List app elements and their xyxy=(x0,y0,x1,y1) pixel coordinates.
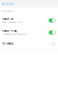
staticText: Set blurred wallpaper on home xyxy=(2,21,23,23)
staticText: Live Wallpaper xyxy=(2,42,14,45)
staticText: Personalization xyxy=(2,10,14,12)
button[interactable]: Wallpaper scrolling xyxy=(0,27,58,38)
staticText: Wallpaper scrolling xyxy=(2,30,17,32)
button[interactable]: Wallpaper Blur xyxy=(0,15,58,26)
staticText: We Launcher xyxy=(4,3,15,5)
staticText: Scroll wallpaper when swiping pages xyxy=(2,33,27,35)
button[interactable]: Live Wallpaper xyxy=(0,39,58,49)
button[interactable]: We Launcher xyxy=(0,0,58,8)
staticText: Wallpaper Blur xyxy=(2,18,14,20)
